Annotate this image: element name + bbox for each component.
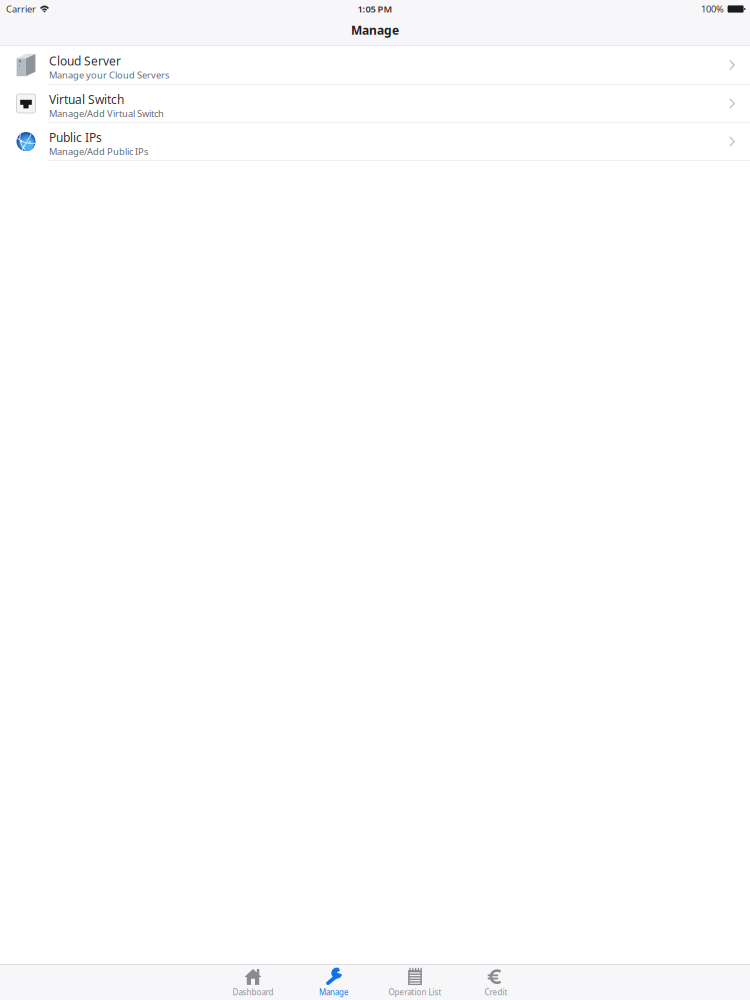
staticText: Carrier (6, 3, 36, 15)
button[interactable]: Manage (293, 966, 374, 998)
button[interactable]: Operation List (374, 966, 455, 998)
staticText: Manage/Add Virtual Switch (49, 107, 164, 120)
button[interactable]: Public IPs (0, 123, 750, 160)
button[interactable]: Credit (455, 966, 536, 998)
staticText: Cloud Server (49, 53, 121, 69)
staticText: Manage your Cloud Servers (49, 69, 169, 81)
staticText: Virtual Switch (49, 91, 124, 107)
staticText: 1:05 PM (358, 3, 393, 15)
staticText: 100% (701, 3, 724, 15)
staticText: Credit (484, 987, 507, 997)
staticText: Manage (351, 22, 399, 38)
staticText: Dashboard (232, 987, 273, 997)
staticText: Operation List (388, 987, 441, 997)
button[interactable]: Cloud Server (0, 46, 750, 84)
staticText: Manage (319, 987, 349, 997)
button[interactable]: Dashboard (212, 966, 293, 998)
button[interactable]: Virtual Switch (0, 85, 750, 122)
staticText: Public IPs (49, 129, 102, 145)
staticText: Manage/Add Public IPs (49, 145, 148, 158)
